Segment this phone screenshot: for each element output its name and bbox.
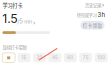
staticText: 历史记录: [85, 2, 101, 8]
staticText: 连续打卡奖励: [2, 44, 26, 50]
staticText: 60: [67, 55, 73, 60]
staticText: 15: [22, 55, 27, 60]
staticText: 打卡领取: [82, 22, 102, 29]
button[interactable]: 历史记录: [85, 1, 104, 9]
staticText: 学习打卡: [2, 1, 22, 9]
button[interactable]: Claim reward: [2, 53, 15, 62]
staticText: 30: [36, 55, 42, 60]
button[interactable]: Reward 100 minutes: [95, 53, 108, 62]
button[interactable]: 1.5: [2, 11, 35, 26]
button[interactable]: Reward 45 minutes: [48, 53, 61, 62]
button[interactable]: Reward 60 minutes: [64, 53, 77, 62]
staticText: 100: [97, 55, 105, 60]
staticText: 45: [52, 55, 58, 60]
button[interactable]: Reward 75 minutes: [79, 53, 92, 62]
staticText: min: [23, 19, 32, 25]
button[interactable]: Reward 15 minutes: [18, 53, 30, 62]
staticText: /5: [17, 18, 23, 25]
staticText: 3h: [97, 11, 104, 18]
button[interactable]: 打卡领取: [80, 21, 104, 29]
button[interactable]: Reward 30 minutes: [33, 53, 46, 62]
staticText: 75: [83, 55, 89, 60]
staticText: 待完成学习: [76, 12, 96, 18]
staticText: 1.5: [2, 11, 17, 26]
